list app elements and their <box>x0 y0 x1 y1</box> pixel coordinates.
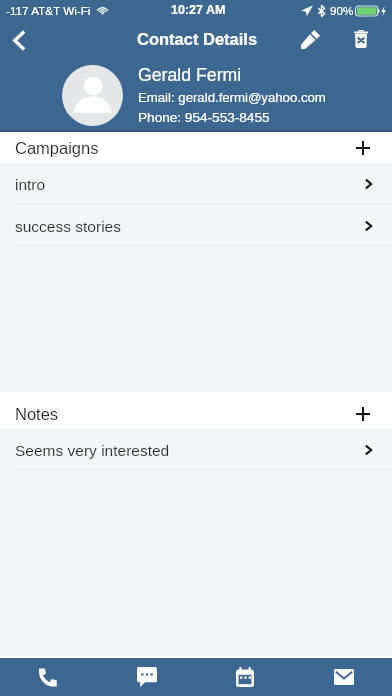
staticText: intro <box>15 176 46 193</box>
button[interactable]: Delete <box>341 20 381 62</box>
button[interactable]: Calendar <box>196 658 294 696</box>
staticText: -117 AT&T Wi-Fi <box>6 4 91 17</box>
button[interactable]: Add Campaigns <box>344 132 392 163</box>
staticText: 10:27 AM <box>171 3 226 17</box>
button[interactable]: Email <box>294 658 392 696</box>
staticText: Notes <box>15 405 59 423</box>
button[interactable]: Back <box>0 20 38 62</box>
staticText: Email: gerald.fermi@yahoo.com <box>138 90 326 105</box>
button[interactable]: Edit <box>288 20 330 62</box>
staticText: Contact Details <box>137 30 258 48</box>
staticText: Phone: 954-553-8455 <box>138 110 270 125</box>
button[interactable]: Seems very interested <box>0 429 392 471</box>
button[interactable]: Message <box>98 658 196 696</box>
staticText: Seems very interested <box>15 442 170 459</box>
staticText: 90% <box>330 4 354 17</box>
button[interactable]: Call <box>0 658 98 696</box>
staticText: Gerald Fermi <box>138 65 242 85</box>
staticText: Campaigns <box>15 139 99 157</box>
button[interactable]: success stories <box>0 205 392 247</box>
staticText: success stories <box>15 218 121 235</box>
button[interactable]: Add Notes <box>344 392 392 429</box>
button[interactable]: intro <box>0 163 392 205</box>
